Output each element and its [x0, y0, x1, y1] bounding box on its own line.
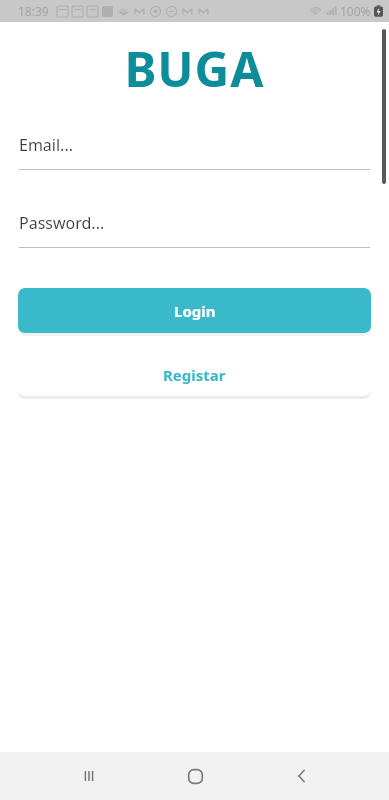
- staticText: 18:39: [18, 3, 49, 19]
- button[interactable]: Login: [18, 288, 371, 333]
- button[interactable]: Recent apps: [66, 753, 112, 799]
- staticText: Password...: [19, 212, 105, 234]
- staticText: Registar: [163, 365, 226, 385]
- staticText: Email...: [19, 134, 73, 156]
- staticText: BUGA: [124, 36, 265, 101]
- staticText: 100%: [340, 3, 371, 19]
- button[interactable]: Home: [172, 753, 218, 799]
- button[interactable]: Back: [279, 753, 325, 799]
- staticText: Login: [174, 301, 216, 321]
- button[interactable]: Registar: [18, 353, 371, 396]
